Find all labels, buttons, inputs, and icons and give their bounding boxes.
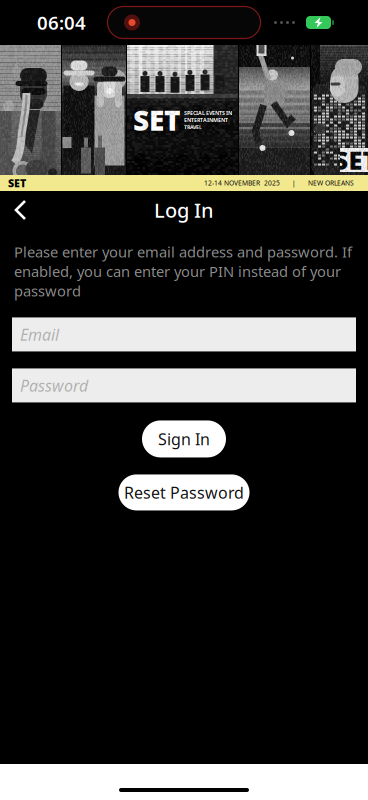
staticText: Password — [20, 375, 88, 396]
button[interactable]: Sign In — [142, 420, 226, 457]
button[interactable]: Back — [0, 191, 42, 229]
staticText: 06:04 — [37, 10, 86, 35]
staticText: NEW ORLEANS — [308, 179, 354, 187]
staticText: TRAVEL — [184, 123, 202, 131]
staticText: SET — [133, 101, 181, 139]
staticText: Log In — [154, 197, 214, 223]
staticText: Reset Password — [124, 482, 244, 503]
staticText: SET — [333, 143, 368, 177]
staticText: Email — [20, 324, 59, 345]
staticText: | — [280, 179, 308, 187]
staticText: 12-14 NOVEMBER 2025 — [204, 179, 280, 187]
button[interactable]: Password — [12, 368, 356, 402]
staticText: ENTERTAINMENT — [184, 116, 228, 124]
staticText: SET — [8, 176, 26, 190]
button[interactable]: Email — [12, 317, 356, 351]
button[interactable]: Reset Password — [118, 474, 249, 510]
staticText: Please enter your email address and pass… — [14, 242, 352, 300]
staticText: Sign In — [158, 428, 210, 449]
staticText: SPECIAL EVENTS IN — [184, 109, 232, 116]
